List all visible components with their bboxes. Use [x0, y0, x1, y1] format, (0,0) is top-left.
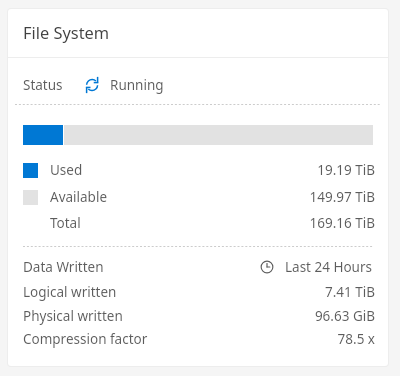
- staticText: 149.97 TiB: [309, 188, 375, 206]
- staticText: 19.19 TiB: [317, 161, 375, 179]
- staticText: 78.5 x: [337, 330, 375, 348]
- button[interactable]: Data Written: [23, 256, 373, 278]
- staticText: Compression factor: [23, 330, 148, 348]
- button[interactable]: [23, 125, 373, 145]
- staticText: Physical written: [23, 307, 123, 325]
- button[interactable]: Used: [23, 159, 373, 181]
- button[interactable]: Logical written: [23, 281, 373, 303]
- staticText: Last 24 Hours: [285, 258, 373, 276]
- staticText: Status: [23, 76, 63, 94]
- staticText: Used: [50, 161, 83, 179]
- staticText: Data Written: [23, 258, 104, 276]
- staticText: Total: [50, 214, 81, 232]
- button[interactable]: Available: [23, 186, 373, 208]
- staticText: File System: [23, 21, 110, 43]
- staticText: Running: [110, 76, 164, 94]
- button[interactable]: File System: [8, 9, 388, 57]
- staticText: 96.63 GiB: [314, 307, 375, 325]
- staticText: Logical written: [23, 283, 117, 301]
- button[interactable]: Total: [23, 212, 373, 234]
- button[interactable]: Status: [23, 73, 373, 97]
- other: Refresh status: [85, 77, 99, 93]
- button[interactable]: Compression factor: [23, 328, 373, 350]
- staticText: 7.41 TiB: [324, 283, 375, 301]
- other: Time range: [260, 260, 274, 274]
- button[interactable]: Physical written: [23, 305, 373, 327]
- staticText: Available: [50, 188, 107, 206]
- staticText: 169.16 TiB: [309, 214, 375, 232]
